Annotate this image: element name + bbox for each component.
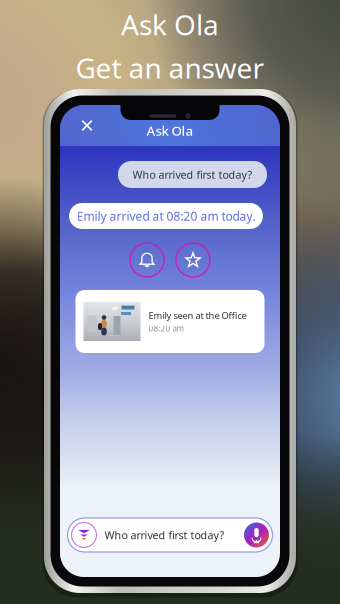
staticText: Who arrived first today? [132,167,252,182]
button[interactable]: Emily seen at the Office [75,290,264,353]
staticText: Emily seen at the Office [148,309,246,322]
button[interactable]: Who arrived first today? [67,518,272,552]
button[interactable]: Favourite [175,242,211,278]
button[interactable]: Close [72,110,102,140]
staticText: Ask Ola [146,122,193,139]
staticText: Ask Ola [121,6,219,43]
button[interactable]: Notifications [129,242,165,278]
staticText: 08:20 am [148,323,183,334]
staticText: Get an answer [75,49,264,86]
staticText: Who arrived first today? [104,528,224,542]
staticText: Emily arrived at 08:20 am today. [76,208,255,224]
